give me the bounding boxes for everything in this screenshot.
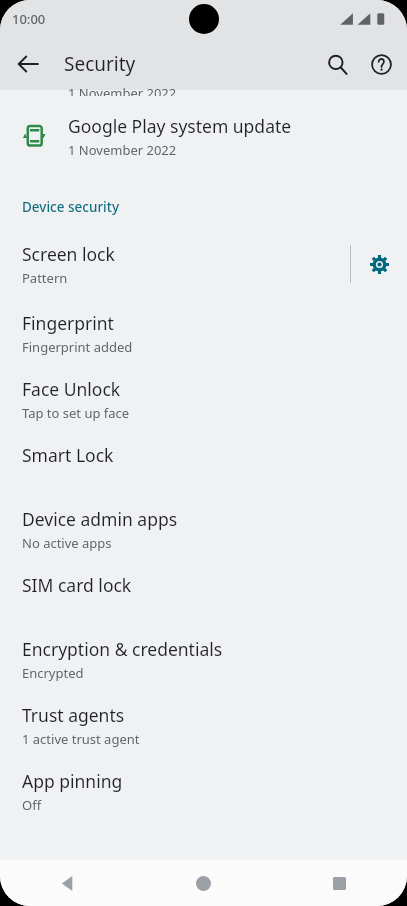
button[interactable]: Smart Lock	[0, 443, 407, 486]
staticText: Pattern	[22, 269, 68, 287]
button[interactable]: Screen lock	[0, 238, 350, 290]
button[interactable]: Google Play system update	[0, 102, 407, 170]
button[interactable]: Face Unlock	[0, 377, 407, 422]
staticText: Fingerprint	[22, 311, 114, 335]
staticText: Screen lock	[22, 242, 115, 266]
staticText: No active apps	[22, 534, 112, 552]
staticText: Tap to set up face	[22, 404, 130, 422]
button[interactable]: Device admin apps	[0, 507, 407, 552]
staticText: Encryption & credentials	[22, 637, 223, 661]
staticText: App pinning	[22, 769, 123, 793]
staticText: 1 November 2022	[68, 84, 177, 96]
button[interactable]: Back	[0, 860, 135, 906]
button[interactable]: Home	[135, 860, 271, 906]
staticText: Device security	[22, 198, 120, 216]
staticText: 10:00	[12, 10, 46, 28]
staticText: Off	[22, 796, 42, 814]
staticText: Face Unlock	[22, 377, 121, 401]
staticText: Fingerprint added	[22, 338, 133, 356]
staticText: Security	[64, 51, 315, 77]
button[interactable]: Trust agents	[0, 703, 407, 748]
button[interactable]: Screen lock settings	[351, 238, 407, 290]
staticText: SIM card lock	[22, 573, 132, 597]
staticText: 1 November 2022	[68, 141, 177, 159]
staticText: Trust agents	[22, 703, 125, 727]
staticText: 1 active trust agent	[22, 730, 140, 748]
button[interactable]: Help	[359, 42, 403, 86]
staticText: Device admin apps	[22, 507, 178, 531]
button[interactable]: Search	[315, 42, 359, 86]
staticText: Smart Lock	[22, 443, 114, 467]
staticText: Encrypted	[22, 664, 84, 682]
button[interactable]: Fingerprint	[0, 311, 407, 356]
staticText: Google Play system update	[68, 114, 292, 138]
button[interactable]: Encryption & credentials	[0, 637, 407, 682]
button[interactable]: Back	[8, 44, 48, 84]
button[interactable]: App pinning	[0, 769, 407, 814]
button[interactable]: Recent apps	[271, 860, 407, 906]
button[interactable]: SIM card lock	[0, 573, 407, 616]
